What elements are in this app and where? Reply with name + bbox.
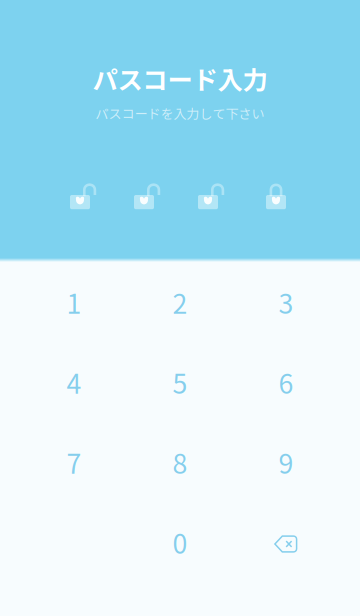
button[interactable]: 7 bbox=[21, 422, 127, 502]
button[interactable]: 5 bbox=[127, 342, 233, 422]
staticText: 6 bbox=[278, 363, 293, 401]
staticText: 3 bbox=[278, 283, 293, 321]
button[interactable]: 8 bbox=[127, 422, 233, 502]
button[interactable]: 2 bbox=[127, 262, 233, 342]
staticText: 4 bbox=[66, 363, 81, 401]
staticText: 2 bbox=[172, 283, 187, 321]
button[interactable]: 3 bbox=[233, 262, 339, 342]
staticText: 1 bbox=[66, 283, 81, 321]
staticText: 8 bbox=[172, 443, 187, 481]
staticText: 9 bbox=[278, 443, 293, 481]
staticText: 0 bbox=[172, 523, 187, 561]
staticText: 5 bbox=[172, 363, 187, 401]
staticText: パスコード入力 bbox=[92, 60, 267, 97]
button[interactable]: 6 bbox=[233, 342, 339, 422]
button[interactable]: 0 bbox=[127, 502, 233, 582]
button[interactable]: 1 bbox=[21, 262, 127, 342]
button[interactable]: Delete bbox=[233, 502, 339, 582]
button[interactable]: 9 bbox=[233, 422, 339, 502]
button[interactable]: 4 bbox=[21, 342, 127, 422]
staticText: 7 bbox=[66, 443, 81, 481]
staticText: パスコードを入力して下さい bbox=[95, 104, 264, 123]
